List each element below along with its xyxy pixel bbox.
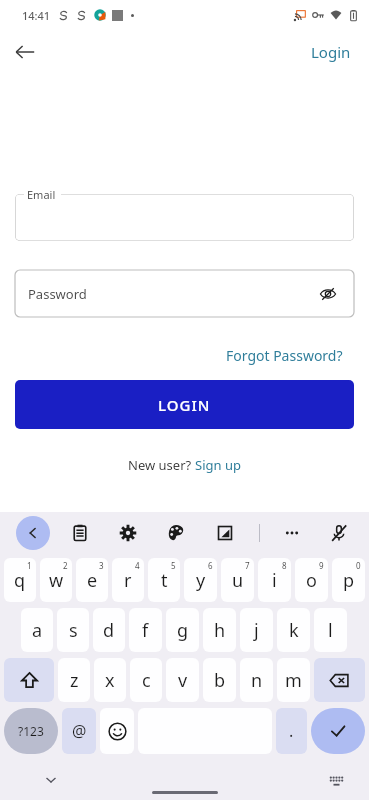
staticText: a (32, 618, 43, 643)
button[interactable]: o (295, 558, 328, 602)
button[interactable]: w (40, 558, 72, 602)
button[interactable]: @ (62, 708, 96, 754)
staticText: 4 (135, 560, 140, 571)
staticText: i (272, 568, 277, 593)
button[interactable]: Emoji (100, 708, 134, 754)
staticText: h (214, 618, 226, 643)
staticText: 8 (282, 560, 287, 571)
staticText: 2 (63, 560, 68, 571)
staticText: j (254, 618, 259, 643)
staticText: o (306, 568, 317, 593)
button[interactable]: Switch keyboard (321, 765, 351, 795)
staticText: Forgot Password? (226, 346, 343, 365)
button[interactable]: h (203, 608, 236, 652)
button[interactable]: Sign up (195, 456, 241, 474)
staticText: c (142, 668, 151, 693)
button[interactable]: r (112, 558, 144, 602)
button[interactable]: a (21, 608, 53, 652)
staticText: q (14, 568, 26, 593)
button[interactable]: LOGIN (15, 380, 354, 429)
button[interactable]: Show password (315, 281, 341, 307)
button[interactable]: More options (276, 517, 308, 549)
button[interactable]: v (166, 658, 199, 702)
button[interactable]: Settings (112, 517, 144, 549)
staticText: v (178, 668, 188, 693)
button[interactable]: ?123 (4, 708, 58, 754)
button[interactable]: j (240, 608, 273, 652)
button[interactable]: . (276, 708, 307, 754)
button[interactable]: i (258, 558, 291, 602)
button[interactable]: c (130, 658, 162, 702)
staticText: 3 (99, 560, 104, 571)
staticText: 1 (27, 560, 32, 571)
button[interactable]: u (221, 558, 254, 602)
button[interactable]: m (277, 658, 310, 702)
staticText: Email (27, 187, 56, 202)
staticText: 5 (171, 560, 176, 571)
button[interactable]: Voice input off (323, 517, 355, 549)
button[interactable]: n (240, 658, 273, 702)
staticText: d (103, 618, 115, 643)
button[interactable]: Backspace (314, 658, 365, 702)
button[interactable]: t (148, 558, 180, 602)
button[interactable]: Previous (16, 516, 50, 550)
staticText: f (142, 618, 149, 643)
staticText: . (289, 720, 294, 742)
staticText: n (251, 668, 263, 693)
staticText: 0 (356, 560, 361, 571)
button[interactable]: d (93, 608, 125, 652)
button[interactable]: e (76, 558, 108, 602)
staticText: Login (311, 42, 351, 62)
staticText: LOGIN (158, 395, 211, 415)
button[interactable]: z (58, 658, 90, 702)
button[interactable]: Hide keyboard (36, 765, 66, 795)
button[interactable]: Shift (4, 658, 54, 702)
staticText: Sign up (195, 456, 241, 474)
staticText: z (70, 668, 79, 693)
button[interactable]: g (166, 608, 199, 652)
staticText: u (232, 568, 244, 593)
staticText: k (289, 618, 299, 643)
staticText: 7 (245, 560, 250, 571)
button[interactable]: Login (307, 38, 355, 66)
staticText: New user? (128, 456, 195, 474)
button[interactable]: x (94, 658, 126, 702)
button[interactable]: y (184, 558, 217, 602)
staticText: 14:41 (22, 8, 51, 23)
staticText: y (196, 568, 206, 593)
staticText: l (328, 618, 333, 643)
staticText: t (161, 568, 168, 593)
button[interactable]: p (332, 558, 365, 602)
button[interactable] (15, 194, 354, 241)
staticText: @ (72, 720, 87, 742)
button[interactable]: s (57, 608, 89, 652)
button[interactable]: Themes (160, 517, 192, 549)
staticText: r (124, 568, 132, 593)
button[interactable]: b (203, 658, 236, 702)
button[interactable]: Enter (311, 708, 365, 754)
button[interactable]: f (129, 608, 162, 652)
button[interactable]: Back (6, 33, 44, 71)
staticText: 6 (208, 560, 213, 571)
staticText: Password (28, 285, 315, 303)
button[interactable]: Forgot Password? (222, 343, 347, 368)
button[interactable]: Resize keyboard (209, 517, 241, 549)
staticText: b (214, 668, 226, 693)
staticText: m (285, 668, 302, 693)
staticText: 9 (319, 560, 324, 571)
staticText: x (105, 668, 115, 693)
staticText: w (49, 568, 64, 593)
button[interactable]: Clipboard (64, 517, 96, 549)
button[interactable]: l (314, 608, 347, 652)
staticText: p (343, 568, 355, 593)
staticText: e (87, 568, 98, 593)
staticText: g (177, 618, 189, 643)
staticText: ?123 (18, 723, 44, 739)
button[interactable]: q (4, 558, 36, 602)
staticText: s (69, 618, 78, 643)
button[interactable]: k (277, 608, 310, 652)
button[interactable]: Password (15, 270, 354, 317)
